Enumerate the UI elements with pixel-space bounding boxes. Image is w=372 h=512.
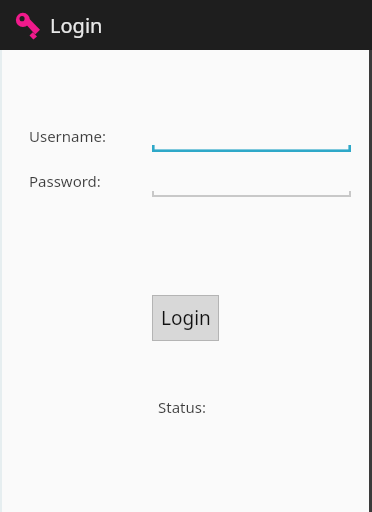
button[interactable]: Password: xyxy=(29,171,101,191)
staticText: Password: xyxy=(29,171,101,191)
staticText: Login xyxy=(50,12,103,39)
button[interactable]: Username: xyxy=(29,126,106,146)
staticText: Status: xyxy=(158,397,206,417)
button[interactable]: Login xyxy=(152,295,219,341)
button[interactable]: Password field xyxy=(152,185,351,199)
staticText: Login xyxy=(161,305,211,331)
staticText: Username: xyxy=(29,126,106,146)
button[interactable]: Status: xyxy=(158,397,206,417)
button[interactable]: Username field xyxy=(152,140,351,154)
other: Key xyxy=(13,10,43,40)
